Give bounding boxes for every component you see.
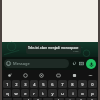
button[interactable]: h bbox=[54, 98, 64, 100]
staticText: o bbox=[81, 91, 84, 96]
staticText: y bbox=[51, 91, 54, 96]
button[interactable]: w bbox=[12, 89, 20, 97]
button[interactable]: 0 bbox=[88, 80, 97, 88]
button[interactable]: u bbox=[58, 89, 67, 97]
staticText: 7 bbox=[61, 82, 64, 87]
button[interactable]: Teks ini akan menjadi monospace bbox=[26, 45, 81, 54]
staticText: 1 bbox=[6, 82, 9, 87]
button[interactable]: Keyboard settings bbox=[5, 71, 14, 80]
staticText: r bbox=[33, 91, 35, 96]
staticText: 9 bbox=[81, 82, 84, 87]
staticText: d bbox=[26, 98, 29, 100]
button[interactable]: Themes bbox=[70, 71, 79, 80]
button[interactable]: 7 bbox=[58, 80, 67, 88]
staticText: u bbox=[61, 91, 64, 96]
staticText: 3 bbox=[24, 82, 27, 87]
staticText: Message bbox=[13, 61, 30, 66]
staticText: 5 bbox=[42, 82, 45, 87]
button[interactable]: t bbox=[39, 89, 47, 97]
button[interactable]: r bbox=[30, 89, 38, 97]
staticText: w bbox=[14, 91, 18, 96]
button[interactable]: y bbox=[48, 89, 57, 97]
button[interactable]: k bbox=[76, 98, 86, 100]
button[interactable]: Voice message bbox=[86, 59, 96, 69]
button[interactable]: Camera bbox=[78, 60, 85, 67]
other: Emoji bbox=[6, 61, 11, 66]
staticText: Teks ini akan menjadi monospace bbox=[28, 46, 79, 50]
button[interactable]: e bbox=[21, 89, 29, 97]
staticText: q bbox=[6, 91, 9, 96]
button[interactable]: Emoji bbox=[4, 59, 69, 68]
button[interactable]: Attach bbox=[71, 60, 78, 67]
button[interactable]: 5 bbox=[39, 80, 47, 88]
button[interactable]: i bbox=[68, 89, 77, 97]
staticText: l bbox=[91, 98, 93, 100]
button[interactable]: 1 bbox=[3, 80, 11, 88]
button[interactable]: d bbox=[23, 98, 32, 100]
staticText: h bbox=[58, 98, 61, 100]
staticText: t bbox=[42, 91, 44, 96]
button[interactable]: f bbox=[33, 98, 42, 100]
staticText: 2 bbox=[15, 82, 18, 87]
staticText: 4 bbox=[33, 82, 36, 87]
staticText: f bbox=[37, 98, 39, 100]
staticText: e bbox=[24, 91, 27, 96]
button[interactable]: q bbox=[3, 89, 11, 97]
staticText: 8 bbox=[71, 82, 74, 87]
staticText: k bbox=[80, 98, 83, 100]
staticText: 0 bbox=[91, 82, 94, 87]
staticText: p bbox=[91, 91, 94, 96]
button[interactable]: 2 bbox=[12, 80, 20, 88]
staticText: 14:05 bbox=[73, 50, 79, 53]
button[interactable]: GIF bbox=[37, 71, 46, 80]
button[interactable]: 4 bbox=[30, 80, 38, 88]
button[interactable]: Stickers bbox=[21, 71, 30, 80]
button[interactable]: 6 bbox=[48, 80, 57, 88]
button[interactable]: o bbox=[78, 89, 87, 97]
staticText: 6 bbox=[51, 82, 54, 87]
button[interactable]: j bbox=[65, 98, 75, 100]
button[interactable]: Clipboard bbox=[54, 71, 63, 80]
staticText: j bbox=[69, 98, 71, 100]
button[interactable]: 3 bbox=[21, 80, 29, 88]
staticText: i bbox=[72, 91, 74, 96]
button[interactable]: 9 bbox=[78, 80, 87, 88]
button[interactable]: 8 bbox=[68, 80, 77, 88]
button[interactable]: More bbox=[86, 71, 95, 80]
button[interactable]: l bbox=[87, 98, 97, 100]
button[interactable]: p bbox=[88, 89, 97, 97]
